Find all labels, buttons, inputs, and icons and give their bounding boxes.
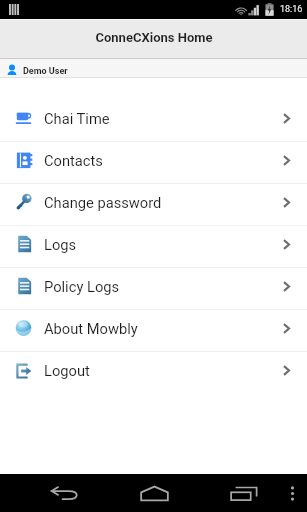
button[interactable]: Logout xyxy=(0,352,307,394)
staticText: ConneCXions Home xyxy=(95,30,213,45)
button[interactable]: Logs xyxy=(0,226,307,268)
button[interactable]: Change password xyxy=(0,184,307,226)
button[interactable]: Chai Time xyxy=(0,100,307,142)
staticText: Demo User xyxy=(23,66,68,77)
staticText: Logout xyxy=(44,362,90,379)
button[interactable]: More options xyxy=(279,474,305,512)
button[interactable]: Policy Logs xyxy=(0,268,307,310)
button[interactable]: About Mowbly xyxy=(0,310,307,352)
staticText: 18:16 xyxy=(280,4,303,15)
button[interactable]: Contacts xyxy=(0,142,307,184)
staticText: Policy Logs xyxy=(44,278,120,295)
staticText: Contacts xyxy=(44,152,103,169)
staticText: About Mowbly xyxy=(44,320,138,337)
button[interactable]: Back xyxy=(35,474,95,512)
staticText: Change password xyxy=(44,194,162,211)
button[interactable]: Home xyxy=(125,474,183,512)
button[interactable]: Recent apps xyxy=(215,474,273,512)
staticText: Chai Time xyxy=(44,110,110,127)
staticText: Logs xyxy=(44,236,77,253)
